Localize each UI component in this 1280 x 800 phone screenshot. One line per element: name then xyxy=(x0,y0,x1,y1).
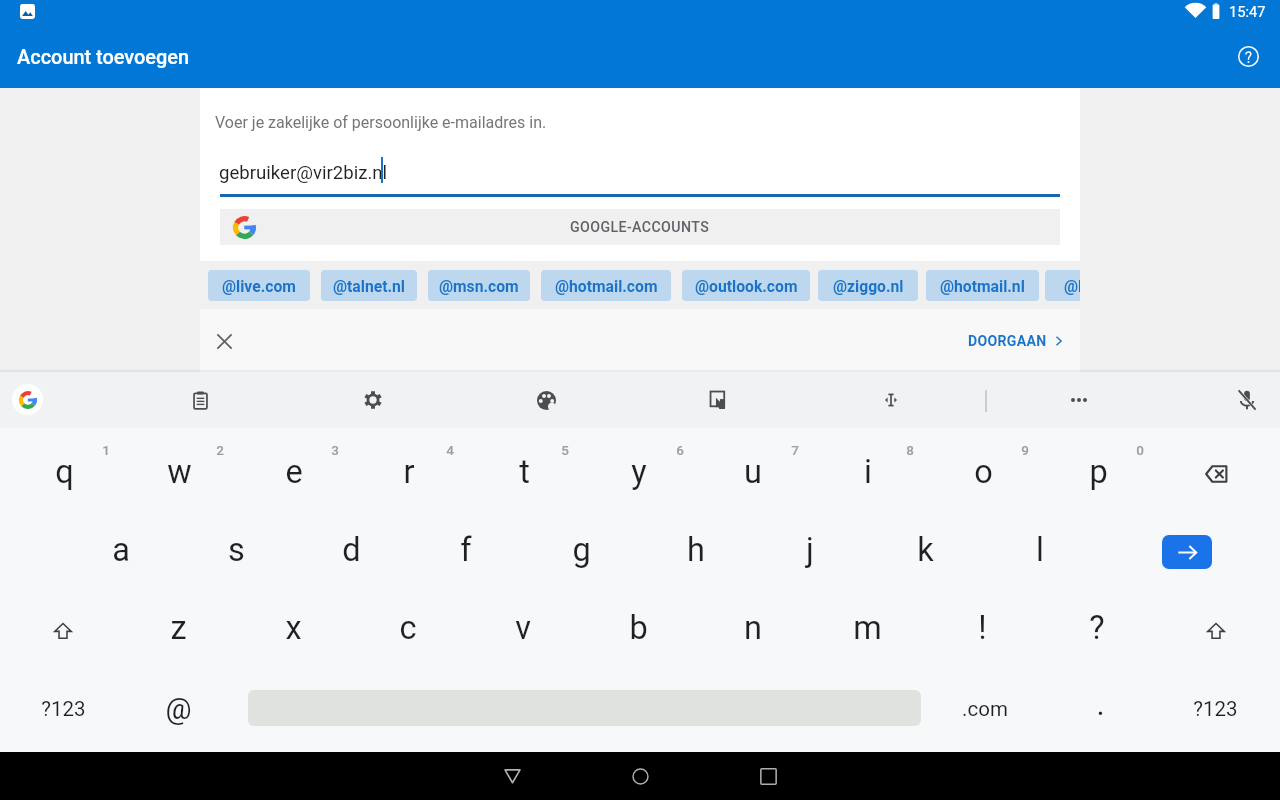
button[interactable]: Themes xyxy=(522,376,570,424)
button[interactable]: GOOGLE-ACCOUNTS xyxy=(220,209,1060,245)
button[interactable]: c xyxy=(357,589,459,667)
staticText: DOORGAAN xyxy=(968,333,1047,350)
button[interactable]: a xyxy=(70,511,172,589)
staticText: z xyxy=(170,609,187,647)
button[interactable]: Recents xyxy=(744,752,792,800)
staticText: ?123 xyxy=(41,697,86,721)
staticText: ? xyxy=(1089,609,1105,647)
button[interactable]: y xyxy=(588,433,690,511)
button[interactable]: j xyxy=(759,511,861,589)
button[interactable]: q xyxy=(13,433,115,511)
button[interactable]: DOORGAAN xyxy=(963,325,1069,357)
button[interactable]: Google xyxy=(12,384,43,415)
staticText: r xyxy=(403,453,415,491)
button[interactable]: @live.com xyxy=(208,270,310,301)
button[interactable]: Voice input off xyxy=(1223,376,1271,424)
staticText: n xyxy=(744,609,762,647)
staticText: t xyxy=(519,453,530,491)
button[interactable]: p xyxy=(1047,433,1149,511)
button[interactable]: g xyxy=(530,511,632,589)
staticText: @hotmail.com xyxy=(555,277,658,295)
button[interactable]: Shift xyxy=(31,599,95,663)
button[interactable]: t xyxy=(473,433,575,511)
button[interactable]: x xyxy=(242,589,344,667)
button[interactable]: @outlook.com xyxy=(682,270,810,301)
staticText: q xyxy=(55,453,74,491)
button[interactable]: e xyxy=(243,433,345,511)
button[interactable]: @ziggo.nl xyxy=(818,270,918,301)
staticText: @ xyxy=(165,692,192,726)
staticText: i xyxy=(864,453,872,491)
button[interactable]: ! xyxy=(931,589,1033,667)
button[interactable]: Help xyxy=(1225,33,1271,79)
staticText: 8 xyxy=(906,442,914,458)
staticText: Account toevoegen xyxy=(17,46,190,69)
button[interactable]: s xyxy=(185,511,287,589)
staticText: 6 xyxy=(676,442,684,458)
staticText: j xyxy=(806,531,814,569)
button[interactable]: . xyxy=(1049,665,1151,743)
button[interactable]: Back xyxy=(488,752,536,800)
button[interactable]: Clipboard xyxy=(176,376,224,424)
staticText: y xyxy=(631,453,647,491)
button[interactable]: @talnet.nl xyxy=(321,270,417,301)
button[interactable]: @hotmail.nl xyxy=(926,270,1039,301)
button[interactable]: Home xyxy=(616,752,664,800)
button[interactable]: More options xyxy=(1055,376,1103,424)
button[interactable]: Close xyxy=(201,318,247,364)
staticText: c xyxy=(399,609,417,647)
button[interactable]: ? xyxy=(1046,589,1148,667)
button[interactable]: Shift xyxy=(1184,599,1248,663)
button[interactable]: Text editing xyxy=(867,376,915,424)
button[interactable]: @live.nl xyxy=(1045,270,1080,301)
staticText: a xyxy=(112,531,130,569)
button[interactable]: h xyxy=(645,511,747,589)
button[interactable]: z xyxy=(127,589,229,667)
button[interactable]: r xyxy=(358,433,460,511)
button[interactable]: @msn.com xyxy=(428,270,530,301)
staticText: e xyxy=(285,453,303,491)
button[interactable]: ?123 xyxy=(12,670,114,748)
button[interactable]: @ xyxy=(127,670,229,748)
button[interactable]: Keyboard settings xyxy=(349,376,397,424)
button[interactable]: u xyxy=(702,433,804,511)
staticText: .com xyxy=(962,697,1008,721)
button[interactable]: Backspace xyxy=(1184,442,1248,506)
button[interactable]: k xyxy=(874,511,976,589)
staticText: @hotmail.nl xyxy=(940,277,1025,295)
staticText: @talnet.nl xyxy=(333,277,405,295)
button[interactable]: Tap input xyxy=(695,376,743,424)
button[interactable]: l xyxy=(989,511,1091,589)
button[interactable]: i xyxy=(817,433,919,511)
staticText: gebruiker@vir2biz.nl xyxy=(219,162,388,184)
staticText: ?123 xyxy=(1193,697,1238,721)
button[interactable]: n xyxy=(702,589,804,667)
button[interactable]: b xyxy=(587,589,689,667)
button[interactable]: o xyxy=(932,433,1034,511)
button[interactable]: d xyxy=(300,511,402,589)
staticText: o xyxy=(974,453,993,491)
staticText: d xyxy=(342,531,361,569)
button[interactable]: m xyxy=(816,589,918,667)
button[interactable]: v xyxy=(472,589,574,667)
staticText: h xyxy=(687,531,705,569)
button[interactable]: .com xyxy=(934,670,1036,748)
staticText: k xyxy=(917,531,934,569)
staticText: b xyxy=(629,609,648,647)
button[interactable]: ?123 xyxy=(1164,670,1266,748)
staticText: 1 xyxy=(102,442,110,458)
staticText: 2 xyxy=(216,442,224,458)
staticText: g xyxy=(572,531,591,569)
staticText: u xyxy=(744,453,762,491)
button[interactable]: w xyxy=(128,433,230,511)
button[interactable]: f xyxy=(415,511,517,589)
staticText: 4 xyxy=(446,442,454,458)
button[interactable]: Enter xyxy=(1162,535,1212,569)
staticText: @ziggo.nl xyxy=(833,277,904,295)
staticText: . xyxy=(1096,686,1105,722)
staticText: 3 xyxy=(331,442,339,458)
button[interactable]: @hotmail.com xyxy=(541,270,671,301)
staticText: 9 xyxy=(1021,442,1029,458)
staticText: @msn.com xyxy=(439,277,519,295)
